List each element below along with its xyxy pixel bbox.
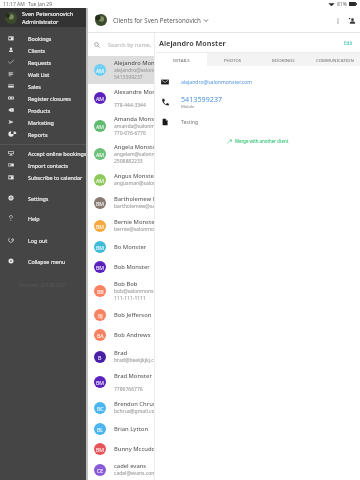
- staticText: 5413599237: [181, 94, 223, 104]
- staticText: Products: [28, 107, 51, 114]
- button[interactable]: Import contacts: [0, 159, 86, 171]
- staticText: Import contacts: [28, 162, 68, 169]
- staticText: bchrus@gmail.com: [114, 408, 155, 415]
- staticText: bernie@salonmonster.com: [114, 226, 155, 233]
- staticText: BM: [96, 446, 105, 453]
- button[interactable]: Requests: [0, 56, 86, 68]
- button[interactable]: Clients for Sven Petersonovich: [113, 16, 208, 24]
- staticText: COMMUNICATION: [316, 57, 354, 63]
- button[interactable]: Edit: [341, 38, 356, 48]
- staticText: BB: [97, 288, 104, 295]
- staticText: BM: [96, 244, 105, 251]
- button[interactable]: 5413599237: [155, 92, 360, 112]
- staticText: CE: [97, 467, 104, 474]
- staticText: 81%: [337, 1, 347, 8]
- staticText: AM: [96, 67, 105, 74]
- staticText: 2508882233: [114, 158, 143, 165]
- staticText: Clients for Sven Petersonovich: [113, 16, 201, 24]
- staticText: Bob Jefferson: [114, 311, 152, 319]
- staticText: AM: [96, 95, 105, 102]
- button[interactable]: BM: [88, 439, 155, 459]
- staticText: Requests: [28, 59, 52, 66]
- staticText: 778-444-3344: [114, 102, 146, 109]
- staticText: cadel@evans.com: [114, 470, 155, 477]
- staticText: amanda@salonmonster.com: [114, 123, 155, 130]
- staticText: BM: [96, 264, 105, 271]
- button[interactable]: BA: [88, 325, 155, 345]
- button[interactable]: BC: [88, 396, 155, 419]
- button[interactable]: BJ: [88, 305, 155, 325]
- staticText: Collapse menu: [28, 258, 66, 265]
- staticText: angelam@salonmo.com: [114, 151, 155, 158]
- button[interactable]: Accept online bookings: [0, 147, 86, 159]
- staticText: Bunny Mccuddyxx: [114, 445, 155, 453]
- button[interactable]: Subscribe to calendar: [0, 171, 86, 183]
- button[interactable]: Sales: [0, 80, 86, 92]
- staticText: brad@beekjkjkj.com: [114, 357, 155, 364]
- button[interactable]: Settings: [0, 192, 86, 204]
- button[interactable]: BM: [88, 237, 155, 257]
- staticText: Bartholemew Mxx: [114, 195, 155, 203]
- staticText: BOOKINGS: [272, 57, 295, 63]
- staticText: Bernie Monster: [114, 218, 155, 226]
- staticText: Sales: [28, 83, 41, 90]
- button[interactable]: BM: [88, 368, 155, 396]
- staticText: Amanda Monster: [114, 115, 155, 123]
- button[interactable]: COMMUNICATION: [309, 53, 360, 66]
- staticText: Sven Petersonovich: [22, 10, 74, 18]
- staticText: angusman@salonmo.com: [114, 180, 155, 187]
- staticText: alejandro@salonmonster.com: [181, 79, 253, 86]
- button[interactable]: Bookings: [0, 32, 86, 44]
- staticText: Clients: [28, 47, 45, 54]
- button[interactable]: AM: [88, 168, 155, 191]
- staticText: Search by name,: [108, 41, 152, 49]
- button[interactable]: B: [88, 345, 155, 368]
- staticText: 5413599237: [114, 74, 143, 81]
- button[interactable]: BM: [88, 191, 155, 214]
- staticText: Edit: [344, 40, 353, 46]
- button[interactable]: Reports: [0, 128, 86, 140]
- button[interactable]: BM: [88, 257, 155, 277]
- button[interactable]: AM: [88, 112, 155, 140]
- staticText: AM: [96, 123, 105, 130]
- button[interactable]: Products: [0, 104, 86, 116]
- button[interactable]: Testing: [155, 112, 360, 132]
- staticText: Bo Monster: [114, 243, 147, 251]
- button[interactable]: alejandro@salonmonster.com: [155, 72, 360, 92]
- button[interactable]: DETAILS: [155, 53, 207, 66]
- button[interactable]: Register closures: [0, 92, 86, 104]
- staticText: Subscribe to calendar: [28, 174, 83, 181]
- button[interactable]: Search by name,: [88, 33, 155, 56]
- staticText: Wait List: [28, 71, 50, 78]
- staticText: BM: [96, 223, 105, 230]
- button[interactable]: BL: [88, 419, 155, 439]
- button[interactable]: Clients: [0, 44, 86, 56]
- button[interactable]: Sven Petersonovich: [0, 8, 86, 27]
- button[interactable]: PHOTOS: [207, 53, 258, 66]
- staticText: Brian Lytton: [114, 425, 149, 433]
- button[interactable]: Marketing: [0, 116, 86, 128]
- button[interactable]: CE: [88, 459, 155, 480]
- button[interactable]: AM: [88, 140, 155, 168]
- button[interactable]: Merge with another client: [224, 136, 292, 146]
- staticText: Reports: [28, 131, 48, 138]
- button[interactable]: Add client: [345, 14, 358, 27]
- button[interactable]: AM: [88, 84, 155, 112]
- staticText: bob@salonmonster.com: [114, 288, 155, 295]
- staticText: Bob Bob: [114, 280, 138, 288]
- button[interactable]: Log out: [0, 234, 86, 246]
- button[interactable]: More options: [331, 14, 344, 27]
- button[interactable]: Wait List: [0, 68, 86, 80]
- staticText: bartholemew@salon.com: [114, 203, 155, 210]
- button[interactable]: BOOKINGS: [258, 53, 309, 66]
- staticText: Tue Jan 29: [28, 1, 53, 8]
- button[interactable]: Collapse menu: [0, 255, 86, 267]
- staticText: Brad: [114, 349, 128, 357]
- button[interactable]: BM: [88, 214, 155, 237]
- staticText: Alejandro Monster: [159, 38, 226, 48]
- button[interactable]: BB: [88, 277, 155, 305]
- button[interactable]: AM: [88, 56, 155, 84]
- button[interactable]: Help: [0, 212, 86, 224]
- staticText: Alejandro Monster: [114, 59, 155, 67]
- staticText: AM: [96, 151, 105, 158]
